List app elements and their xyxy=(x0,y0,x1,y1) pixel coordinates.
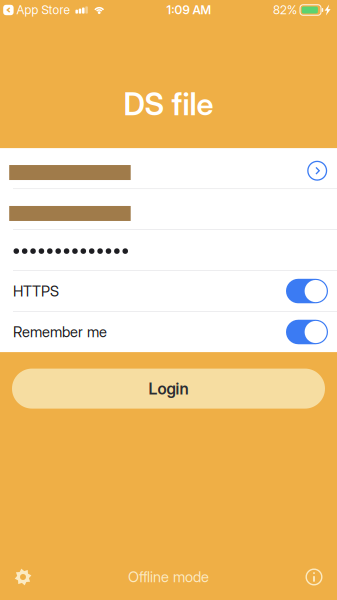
button[interactable]: HTTPS xyxy=(0,271,337,311)
button[interactable]: Offline mode xyxy=(128,560,209,594)
button[interactable]: Remember me xyxy=(0,312,337,352)
staticText: App Store xyxy=(17,3,70,17)
button[interactable]: About xyxy=(296,560,332,594)
staticText: 1:09 AM xyxy=(166,3,211,17)
staticText: Offline mode xyxy=(128,568,209,586)
staticText: HTTPS xyxy=(13,282,59,300)
button[interactable]: Login xyxy=(12,369,325,409)
staticText: 82% xyxy=(273,3,297,17)
staticText: Remember me xyxy=(13,323,107,341)
button[interactable]: Recent addresses xyxy=(302,153,332,183)
staticText: Login xyxy=(148,379,188,398)
staticText: DS file xyxy=(123,85,213,123)
button[interactable]: Settings xyxy=(5,560,41,594)
